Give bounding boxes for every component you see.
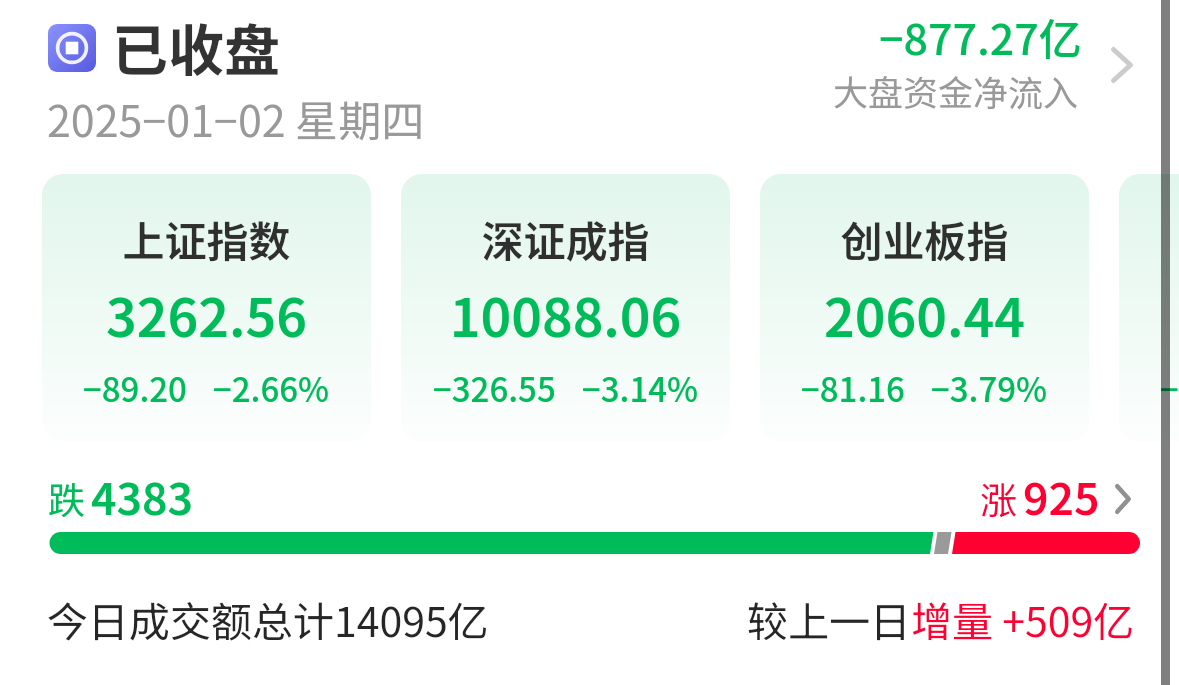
staticText: 10088.06 — [401, 276, 730, 353]
staticText: 涨 — [980, 471, 1017, 525]
button[interactable]: 上证指数 — [42, 174, 371, 441]
staticText: 已收盘 — [112, 6, 280, 87]
staticText: −81.16 — [801, 364, 905, 412]
staticText: 4383 — [91, 464, 194, 528]
button[interactable]: 今日成交额总计14095亿 — [36, 580, 1144, 658]
staticText: 北证50 — [1119, 208, 1179, 269]
button[interactable]: −877.27亿 — [820, 4, 1140, 122]
staticText: 增量 — [911, 589, 993, 648]
staticText: 今日成交额总计14095亿 — [47, 589, 489, 648]
staticText: −877.27亿 — [879, 5, 1082, 67]
staticText: −3.79% — [931, 364, 1048, 412]
button[interactable]: 跌 — [36, 462, 1144, 562]
staticText: 2025−01−02 星期四 — [47, 87, 425, 149]
button[interactable]: 创业板指 — [760, 174, 1089, 441]
staticText: +509亿 — [993, 589, 1135, 648]
staticText: 1017.95 — [1119, 276, 1179, 353]
other: 查看涨跌家数详情 — [1115, 484, 1131, 514]
staticText: −3.14% — [582, 364, 699, 412]
staticText: 创业板指 — [760, 208, 1089, 269]
staticText: 深证成指 — [401, 208, 730, 269]
button[interactable]: 北证50 — [1119, 174, 1179, 441]
staticText: −2.66% — [213, 364, 330, 412]
staticText: 上证指数 — [42, 208, 371, 269]
other: 查看大盘资金净流入详情 — [1111, 47, 1133, 83]
button[interactable]: 已收盘 — [36, 4, 456, 150]
staticText: 跌 — [48, 471, 85, 525]
staticText: 大盘资金净流入 — [833, 65, 1079, 116]
staticText: −89.20 — [83, 364, 187, 412]
staticText: 较上一日 — [747, 589, 911, 648]
staticText: −326.55 — [433, 364, 556, 412]
staticText: −21.25 — [1160, 364, 1179, 412]
staticText: 3262.56 — [42, 276, 371, 353]
staticText: 925 — [1023, 464, 1100, 528]
staticText: 2060.44 — [760, 276, 1089, 353]
button[interactable]: 深证成指 — [401, 174, 730, 441]
